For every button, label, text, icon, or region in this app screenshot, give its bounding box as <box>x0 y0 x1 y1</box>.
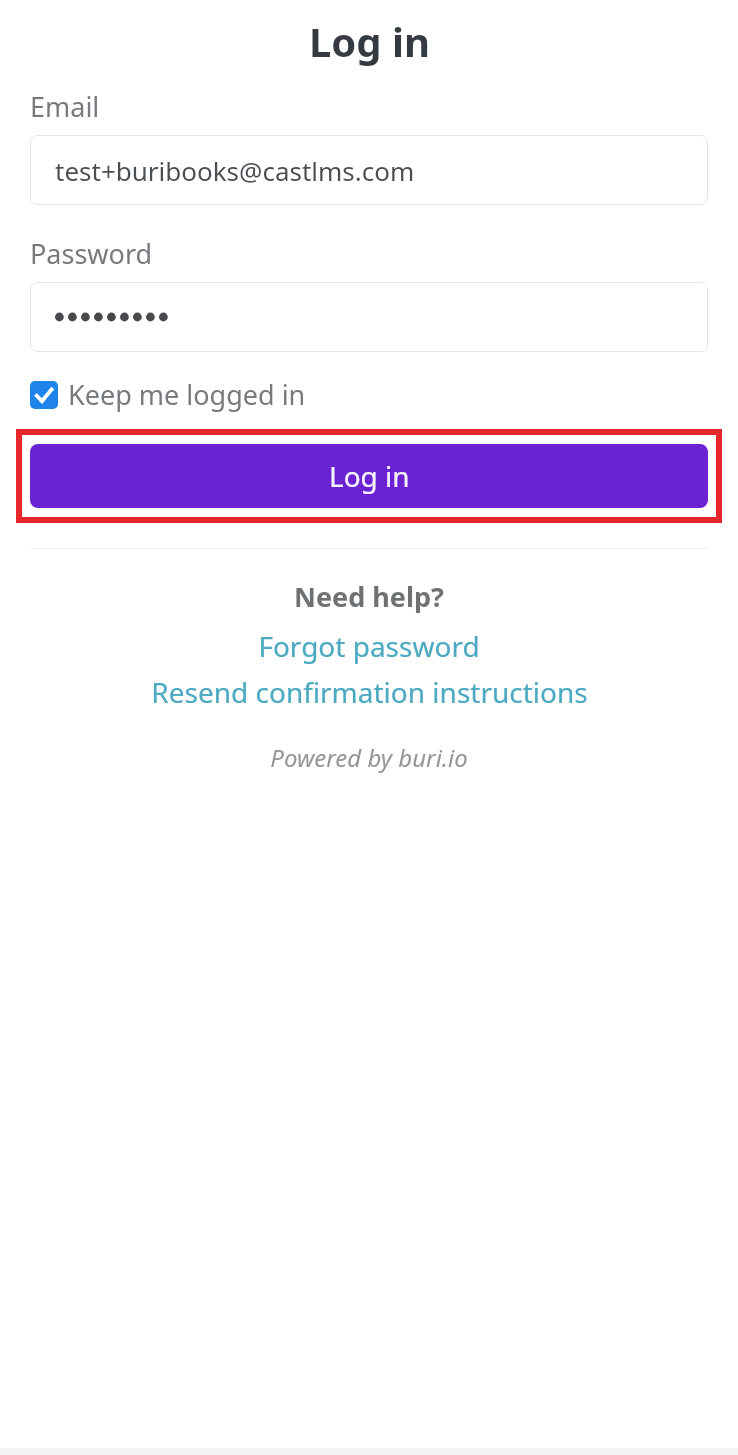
staticText: Keep me logged in <box>68 376 306 413</box>
staticText: Resend confirmation instructions <box>151 673 588 711</box>
staticText: test+buribooks@castlms.com <box>55 153 415 188</box>
staticText: Need help? <box>294 578 444 615</box>
staticText: Log in <box>329 457 410 495</box>
staticText: Password <box>30 235 153 272</box>
other: Keep me logged in checkbox, checked <box>30 381 58 409</box>
staticText: Email <box>30 88 100 125</box>
staticText: Log in <box>309 14 430 68</box>
staticText: Forgot password <box>258 627 480 665</box>
staticText: Powered by buri.io <box>270 741 468 774</box>
button[interactable] <box>30 282 708 352</box>
button[interactable]: Resend confirmation instructions <box>0 673 738 711</box>
button[interactable]: Forgot password <box>0 627 738 665</box>
button[interactable]: test+buribooks@castlms.com <box>30 135 708 205</box>
button[interactable]: Keep me logged in checkbox, checked <box>30 376 306 413</box>
button[interactable]: Log in <box>30 444 708 508</box>
